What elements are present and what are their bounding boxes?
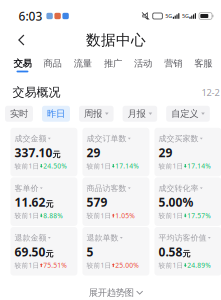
- staticText: 1.05%: [115, 211, 135, 220]
- staticText: 退款金额: [14, 233, 46, 243]
- staticText: 客服: [194, 58, 212, 69]
- button[interactable]: 成交买家数: [154, 128, 221, 176]
- staticText: 25.00%: [115, 261, 139, 270]
- staticText: 月报: [128, 108, 146, 119]
- staticText: 商品: [44, 58, 62, 69]
- staticText: 交易概况: [12, 85, 60, 100]
- staticText: 较前1日: [14, 211, 39, 220]
- staticText: 24.50%: [43, 161, 67, 170]
- staticText: 商品访客数: [86, 183, 126, 193]
- button[interactable]: 客单价: [10, 177, 77, 226]
- button[interactable]: 成交金额: [10, 128, 77, 176]
- staticText: 成交订单数: [86, 134, 126, 143]
- staticText: 8.88%: [43, 211, 63, 220]
- staticText: 5G: [165, 12, 172, 20]
- staticText: 75.51%: [43, 261, 67, 270]
- button[interactable]: 昨日: [42, 106, 70, 122]
- staticText: 较前1日: [158, 161, 183, 170]
- button[interactable]: 自定义: [166, 106, 210, 122]
- staticText: 成交金额: [14, 134, 46, 143]
- staticText: 客单价: [14, 183, 38, 193]
- staticText: 流量: [74, 58, 92, 69]
- staticText: 69.50: [14, 244, 45, 260]
- staticText: 337.10: [14, 145, 52, 160]
- button[interactable]: 活动: [128, 53, 158, 77]
- button[interactable]: 成交订单数: [82, 128, 149, 176]
- staticText: 24.89%: [187, 261, 211, 270]
- staticText: 较前1日: [158, 211, 183, 220]
- button[interactable]: 营销: [158, 53, 188, 77]
- staticText: 17.14%: [187, 161, 211, 170]
- staticText: 5.00%: [158, 194, 193, 210]
- button[interactable]: 成交转化率: [154, 177, 221, 226]
- staticText: 较前1日: [158, 261, 183, 270]
- staticText: 17.14%: [115, 161, 139, 170]
- staticText: 较前1日: [86, 261, 111, 270]
- staticText: 数据中心: [86, 31, 146, 49]
- button[interactable]: 推广: [98, 53, 128, 77]
- button[interactable]: 商品: [37, 53, 68, 77]
- button[interactable]: 退款金额: [10, 227, 77, 276]
- staticText: 11.62: [14, 194, 45, 210]
- button[interactable]: 流量: [68, 53, 98, 77]
- staticText: 昨日: [47, 108, 65, 119]
- staticText: 5G: [182, 12, 189, 20]
- staticText: 5: [86, 244, 93, 260]
- staticText: 周报: [84, 108, 102, 119]
- staticText: 579: [86, 194, 107, 210]
- staticText: 展开趋势图: [89, 287, 134, 298]
- staticText: 29: [158, 145, 172, 160]
- staticText: 较前1日: [86, 211, 111, 220]
- button[interactable]: 月报: [123, 106, 157, 122]
- staticText: 推广: [104, 58, 122, 69]
- button[interactable]: 返回: [11, 28, 35, 52]
- button[interactable]: 平均访客价值: [154, 227, 221, 276]
- button[interactable]: 周报: [79, 106, 114, 122]
- button[interactable]: 退款单数: [82, 227, 149, 276]
- staticText: 成交转化率: [158, 183, 198, 193]
- staticText: 较前1日: [86, 161, 111, 170]
- staticText: 自定义: [171, 108, 198, 119]
- staticText: 元: [45, 249, 53, 259]
- button[interactable]: 展开趋势图: [5, 284, 221, 300]
- staticText: 交易: [13, 58, 31, 69]
- staticText: 实时: [10, 108, 28, 119]
- staticText: 退款单数: [86, 233, 118, 243]
- staticText: 成交买家数: [158, 134, 198, 143]
- button[interactable]: 交易: [7, 53, 37, 77]
- staticText: 活动: [134, 58, 152, 69]
- staticText: 0.58: [158, 244, 182, 260]
- button[interactable]: 商品访客数: [82, 177, 149, 226]
- button[interactable]: 客服: [188, 53, 218, 77]
- staticText: 元: [182, 249, 190, 259]
- staticText: 营销: [164, 58, 182, 69]
- staticText: 元: [45, 199, 53, 209]
- staticText: 12-2: [201, 86, 219, 99]
- staticText: 平均访客价值: [158, 233, 206, 243]
- button[interactable]: 实时: [5, 106, 33, 122]
- staticText: 较前1日: [14, 261, 39, 270]
- staticText: 29: [86, 145, 100, 160]
- staticText: 元: [52, 150, 60, 159]
- staticText: 17.57%: [187, 211, 211, 220]
- staticText: 6:03: [18, 8, 42, 24]
- staticText: 较前1日: [14, 161, 39, 170]
